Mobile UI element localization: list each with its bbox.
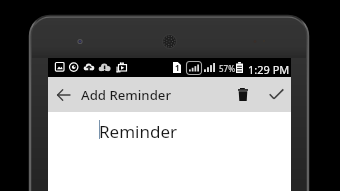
staticText: 1:29 PM xyxy=(248,62,290,77)
button[interactable]: Delete reminder xyxy=(231,82,255,107)
staticText: 1 xyxy=(175,62,180,73)
staticText: Add Reminder xyxy=(81,86,171,104)
staticText: Reminder xyxy=(99,120,178,143)
button[interactable]: Save reminder xyxy=(264,81,288,106)
staticText: 57% xyxy=(219,63,235,74)
button[interactable]: Navigate up xyxy=(51,83,75,107)
